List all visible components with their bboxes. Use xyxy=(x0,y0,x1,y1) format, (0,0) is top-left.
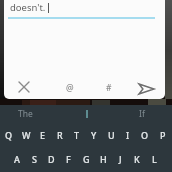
staticText: D xyxy=(48,153,55,165)
staticText: L xyxy=(152,153,157,165)
button[interactable]: F xyxy=(60,151,76,167)
staticText: W xyxy=(22,129,31,141)
button[interactable]: P xyxy=(155,127,171,143)
button[interactable]: Y xyxy=(86,127,102,143)
staticText: J xyxy=(119,153,122,165)
staticText: @ xyxy=(66,82,74,94)
button[interactable]: H xyxy=(95,151,111,167)
button[interactable]: L xyxy=(146,151,162,167)
staticText: K xyxy=(134,153,140,165)
staticText: # xyxy=(106,82,112,94)
button[interactable]: D xyxy=(43,151,59,167)
button[interactable]: R xyxy=(52,127,68,143)
staticText: Q xyxy=(5,129,13,141)
button[interactable]: A xyxy=(9,151,25,167)
button[interactable] xyxy=(14,77,34,97)
button[interactable]: G xyxy=(78,151,94,167)
button[interactable]: O xyxy=(137,127,153,143)
staticText: doesn't. xyxy=(10,1,46,14)
button[interactable] xyxy=(135,79,157,99)
button[interactable]: The xyxy=(8,106,42,122)
staticText: U xyxy=(108,129,115,141)
button[interactable]: Q xyxy=(1,127,17,143)
button[interactable]: I xyxy=(120,127,136,143)
staticText: S xyxy=(32,153,37,165)
staticText: Y xyxy=(91,129,97,141)
button[interactable]: S xyxy=(26,151,42,167)
staticText: If xyxy=(139,108,145,120)
staticText: I xyxy=(126,129,130,141)
button[interactable]: J xyxy=(112,151,128,167)
staticText: P xyxy=(160,129,166,141)
staticText: H xyxy=(100,153,107,165)
staticText: R xyxy=(57,129,63,141)
button[interactable]: E xyxy=(35,127,51,143)
staticText: E xyxy=(40,129,46,141)
staticText: T xyxy=(74,129,80,141)
button[interactable]: # xyxy=(99,78,119,98)
button[interactable]: If xyxy=(131,106,153,122)
button[interactable]: U xyxy=(103,127,119,143)
staticText: O xyxy=(141,129,149,141)
staticText: The xyxy=(18,108,33,120)
staticText: F xyxy=(66,153,71,165)
staticText: G xyxy=(83,153,90,165)
button[interactable]: W xyxy=(18,127,34,143)
button[interactable]: @ xyxy=(60,78,80,98)
staticText: A xyxy=(14,153,20,165)
button[interactable]: K xyxy=(129,151,145,167)
button[interactable] xyxy=(76,106,98,122)
button[interactable]: T xyxy=(69,127,85,143)
